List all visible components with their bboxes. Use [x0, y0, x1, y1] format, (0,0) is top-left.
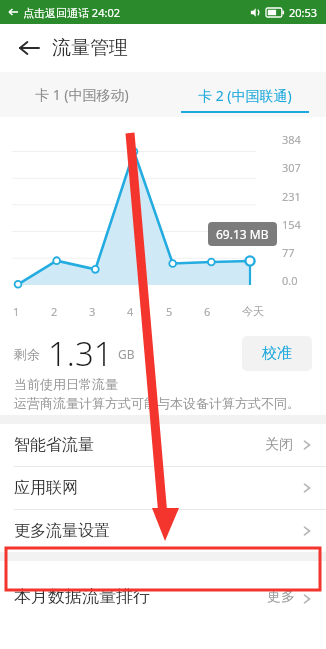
staticText: 77: [282, 245, 295, 260]
button[interactable]: 校准: [242, 336, 312, 371]
staticText: 校准: [262, 344, 292, 363]
staticText: 0.0: [282, 273, 298, 288]
staticText: 307: [282, 160, 301, 175]
staticText: 20:53: [289, 5, 318, 20]
staticText: 5: [166, 304, 173, 319]
staticText: 点击返回通话 24:02: [23, 5, 120, 20]
staticText: 更多流量设置: [14, 521, 110, 541]
staticText: 剩余: [14, 346, 40, 362]
staticText: 当前使用日常流量: [14, 376, 118, 392]
staticText: GB: [118, 346, 135, 362]
button[interactable]: 本月数据流量排行: [0, 561, 326, 613]
staticText: 1: [13, 304, 20, 319]
staticText: 流量管理: [52, 36, 128, 60]
staticText: 6: [204, 304, 211, 319]
staticText: 3: [89, 304, 96, 319]
button[interactable]: 更多流量设置: [0, 510, 326, 552]
staticText: 384: [282, 132, 301, 147]
staticText: 今天: [242, 304, 264, 318]
staticText: 关闭: [265, 436, 293, 454]
staticText: 4: [127, 304, 134, 319]
button[interactable]: 卡 1 (中国移动): [0, 72, 163, 117]
staticText: 231: [282, 189, 301, 204]
button[interactable]: 应用联网: [0, 467, 326, 509]
staticText: 154: [282, 217, 301, 232]
staticText: 卡 1 (中国移动): [35, 85, 129, 104]
button[interactable]: 卡 2 (中国联通): [163, 72, 326, 117]
staticText: 69.13 MB: [216, 226, 269, 242]
staticText: 2: [51, 304, 58, 319]
button[interactable]: Back: [12, 31, 46, 65]
staticText: 本月数据流量排行: [14, 586, 150, 607]
staticText: 智能省流量: [14, 435, 94, 455]
staticText: 运营商流量计算方式可能与本设备计算方式不同。: [14, 395, 300, 411]
button[interactable]: 智能省流量: [0, 424, 326, 466]
staticText: 应用联网: [14, 478, 78, 498]
staticText: 1.31: [48, 331, 113, 376]
staticText: 更多: [267, 588, 295, 606]
staticText: 卡 2 (中国联通): [198, 86, 292, 105]
